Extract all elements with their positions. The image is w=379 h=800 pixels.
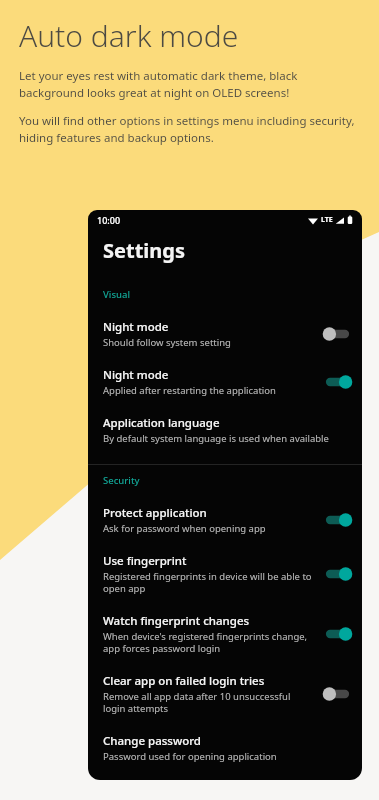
button[interactable]: Use fingerprint bbox=[88, 547, 362, 607]
staticText: Application language bbox=[103, 415, 220, 431]
staticText: Night mode bbox=[103, 367, 169, 383]
button[interactable]: Night mode bbox=[88, 361, 362, 409]
staticText: Clear app on failed login tries bbox=[103, 673, 265, 689]
staticText: LTE bbox=[321, 215, 333, 225]
button[interactable]: Toggle off bbox=[323, 686, 352, 702]
button[interactable]: Toggle on bbox=[323, 374, 352, 390]
staticText: Ask for password when opening app bbox=[103, 522, 266, 535]
button[interactable]: Toggle on bbox=[323, 566, 352, 582]
staticText: When device's registered fingerprints ch… bbox=[103, 630, 313, 655]
staticText: Watch fingerprint changes bbox=[103, 613, 250, 629]
staticText: By default system language is used when … bbox=[103, 432, 329, 445]
button[interactable]: Protect application bbox=[88, 499, 362, 547]
staticText: Change password bbox=[103, 733, 201, 749]
button[interactable]: Toggle on bbox=[323, 512, 352, 528]
button[interactable]: Night mode bbox=[88, 313, 362, 361]
staticText: Let your eyes rest with automatic dark t… bbox=[19, 68, 359, 100]
staticText: Should follow system setting bbox=[103, 336, 231, 349]
staticText: Visual bbox=[103, 288, 130, 301]
button[interactable]: Toggle on bbox=[323, 626, 352, 642]
staticText: You will find other options in settings … bbox=[19, 113, 359, 145]
staticText: Auto dark mode bbox=[19, 15, 239, 56]
button[interactable]: Clear app on failed login tries bbox=[88, 667, 362, 727]
staticText: Protect application bbox=[103, 505, 207, 521]
staticText: Password used for opening application bbox=[103, 750, 277, 763]
staticText: 10:00 bbox=[97, 214, 121, 226]
staticText: Use fingerprint bbox=[103, 553, 187, 569]
staticText: Applied after restarting the application bbox=[103, 384, 276, 397]
button[interactable]: Watch fingerprint changes bbox=[88, 607, 362, 667]
staticText: Settings bbox=[103, 237, 185, 264]
staticText: Registered fingerprints in device will b… bbox=[103, 570, 313, 595]
staticText: Remove all app data after 10 unsuccessfu… bbox=[103, 690, 313, 715]
staticText: Night mode bbox=[103, 319, 169, 335]
button[interactable]: Application language bbox=[88, 409, 362, 457]
button[interactable]: Toggle off bbox=[323, 326, 352, 342]
staticText: Security bbox=[103, 474, 140, 487]
button[interactable]: Change password bbox=[88, 727, 362, 775]
